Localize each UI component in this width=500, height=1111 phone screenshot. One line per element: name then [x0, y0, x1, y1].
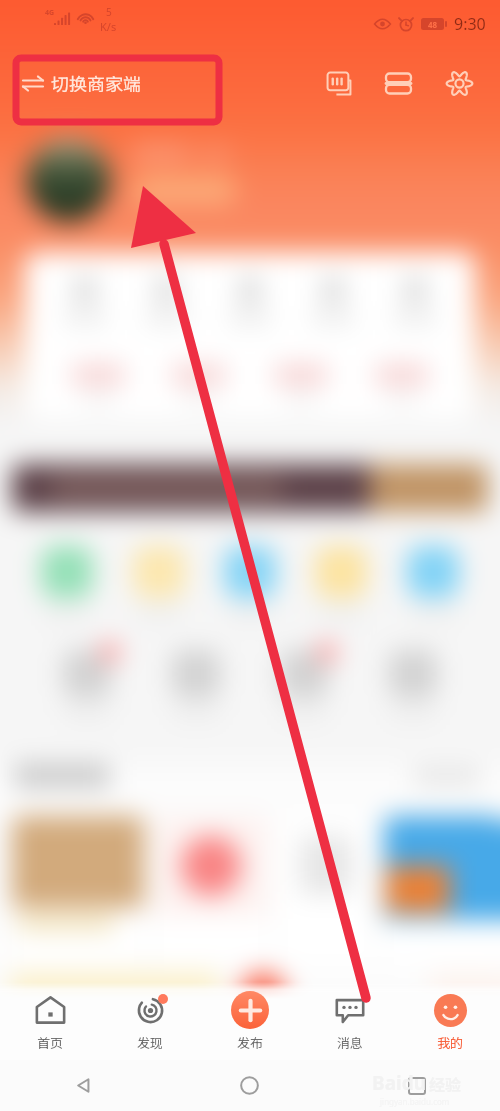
- button[interactable]: [273, 360, 329, 409]
- button[interactable]: Messages: [319, 63, 359, 103]
- button[interactable]: 我的: [400, 982, 500, 1060]
- staticText: 消息: [337, 1033, 364, 1052]
- button[interactable]: Back: [0, 1060, 166, 1111]
- staticText: 4G: [45, 8, 55, 18]
- staticText: Baidu: [372, 1070, 427, 1096]
- button[interactable]: [12, 816, 144, 966]
- button[interactable]: [70, 360, 126, 409]
- button[interactable]: Settings: [439, 63, 479, 103]
- button[interactable]: [37, 546, 97, 619]
- staticText: K/s: [100, 19, 117, 34]
- button[interactable]: [57, 650, 117, 719]
- button[interactable]: [278, 816, 374, 966]
- button[interactable]: [166, 650, 226, 719]
- button[interactable]: [311, 546, 371, 619]
- staticText: 9:30: [454, 13, 486, 35]
- button[interactable]: 消息: [300, 982, 400, 1060]
- staticText: 发现: [137, 1033, 164, 1052]
- button[interactable]: [171, 360, 227, 409]
- button[interactable]: [383, 650, 443, 719]
- button[interactable]: Home: [166, 1060, 333, 1111]
- button[interactable]: [227, 273, 273, 328]
- staticText: 我的: [437, 1033, 464, 1052]
- button[interactable]: [392, 273, 438, 328]
- staticText: 经验: [429, 1072, 462, 1095]
- button[interactable]: [403, 546, 463, 619]
- button[interactable]: [12, 464, 488, 512]
- button[interactable]: [374, 360, 430, 409]
- staticText: 48: [428, 19, 438, 30]
- button[interactable]: 发现: [100, 982, 200, 1060]
- button[interactable]: [310, 273, 356, 328]
- button[interactable]: [62, 273, 108, 328]
- staticText: 首页: [37, 1033, 64, 1052]
- button[interactable]: [154, 816, 268, 966]
- button[interactable]: [220, 546, 280, 619]
- button[interactable]: Scan: [378, 63, 418, 103]
- button[interactable]: [144, 273, 190, 328]
- button[interactable]: 首页: [0, 982, 100, 1060]
- button[interactable]: 发布: [200, 982, 300, 1060]
- button[interactable]: [274, 650, 334, 719]
- button[interactable]: [384, 816, 500, 966]
- button[interactable]: 切换商家端: [20, 62, 144, 104]
- button[interactable]: [129, 546, 189, 619]
- staticText: 发布: [237, 1033, 264, 1052]
- button[interactable]: [26, 137, 111, 222]
- staticText: 切换商家端: [51, 70, 141, 96]
- button[interactable]: Recents: [333, 1060, 500, 1111]
- staticText: 5: [106, 5, 112, 19]
